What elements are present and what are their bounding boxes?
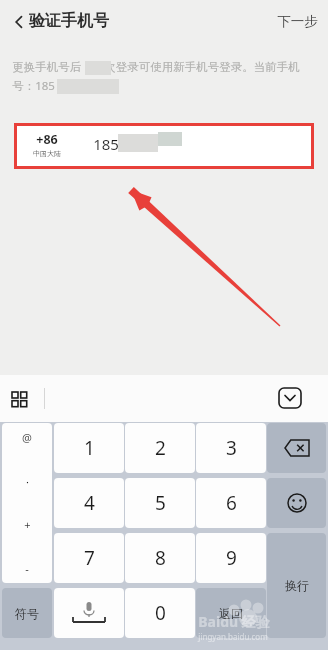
other: Emoji	[267, 478, 326, 528]
button[interactable]: Keyboard layouts	[5, 385, 33, 413]
button[interactable]: 7	[54, 533, 124, 583]
staticText: 返回	[219, 606, 243, 621]
button[interactable]: 8	[125, 533, 195, 583]
button[interactable]: 4	[54, 478, 124, 528]
button[interactable]: Emoji	[267, 478, 326, 528]
staticText: 更换手机号后，下次登录可使用新手机号登录。当前手机	[12, 60, 300, 74]
button[interactable]: 换行	[267, 533, 326, 638]
button[interactable]: 返回	[196, 588, 266, 638]
button[interactable]: 1	[54, 423, 124, 473]
staticText: @	[22, 430, 32, 445]
staticText: +86	[36, 131, 58, 148]
button[interactable]: Backspace	[267, 423, 326, 473]
button[interactable]: Back	[4, 7, 34, 37]
staticText: 6	[226, 490, 237, 516]
button[interactable]	[54, 588, 124, 638]
staticText: 1	[84, 435, 95, 461]
staticText: Baidu 经验	[198, 612, 270, 631]
button[interactable]: 6	[196, 478, 266, 528]
button[interactable]: 0	[125, 588, 195, 638]
staticText: 2	[155, 435, 166, 461]
staticText: 符号	[15, 606, 39, 621]
staticText: jingyan.baidu.com	[198, 631, 268, 642]
staticText: 7	[84, 545, 95, 571]
staticText: 5	[155, 490, 166, 516]
button[interactable]: 5	[125, 478, 195, 528]
staticText: -	[25, 561, 29, 576]
button[interactable]: @	[2, 423, 52, 583]
staticText: 4	[84, 490, 95, 516]
staticText: 换行	[285, 578, 309, 593]
staticText: 8	[155, 545, 166, 571]
button[interactable]: 2	[125, 423, 195, 473]
button[interactable]: +86	[17, 126, 311, 166]
staticText: 号：185	[12, 78, 55, 94]
button[interactable]: 9	[196, 533, 266, 583]
staticText: 0	[155, 600, 166, 626]
button[interactable]: Hide keyboard	[276, 387, 304, 409]
staticText: 中国大陆	[33, 149, 61, 158]
staticText: +	[24, 517, 31, 532]
staticText: 3	[226, 435, 237, 461]
button[interactable]: 符号	[2, 588, 52, 638]
staticText: 185	[93, 134, 119, 154]
staticText: 9	[226, 545, 237, 571]
staticText: ·	[26, 474, 29, 489]
other: Backspace	[267, 423, 326, 473]
staticText: 验证手机号	[29, 11, 109, 31]
button[interactable]: 下一步	[270, 6, 324, 36]
button[interactable]: 3	[196, 423, 266, 473]
staticText: 下一步	[277, 13, 318, 30]
